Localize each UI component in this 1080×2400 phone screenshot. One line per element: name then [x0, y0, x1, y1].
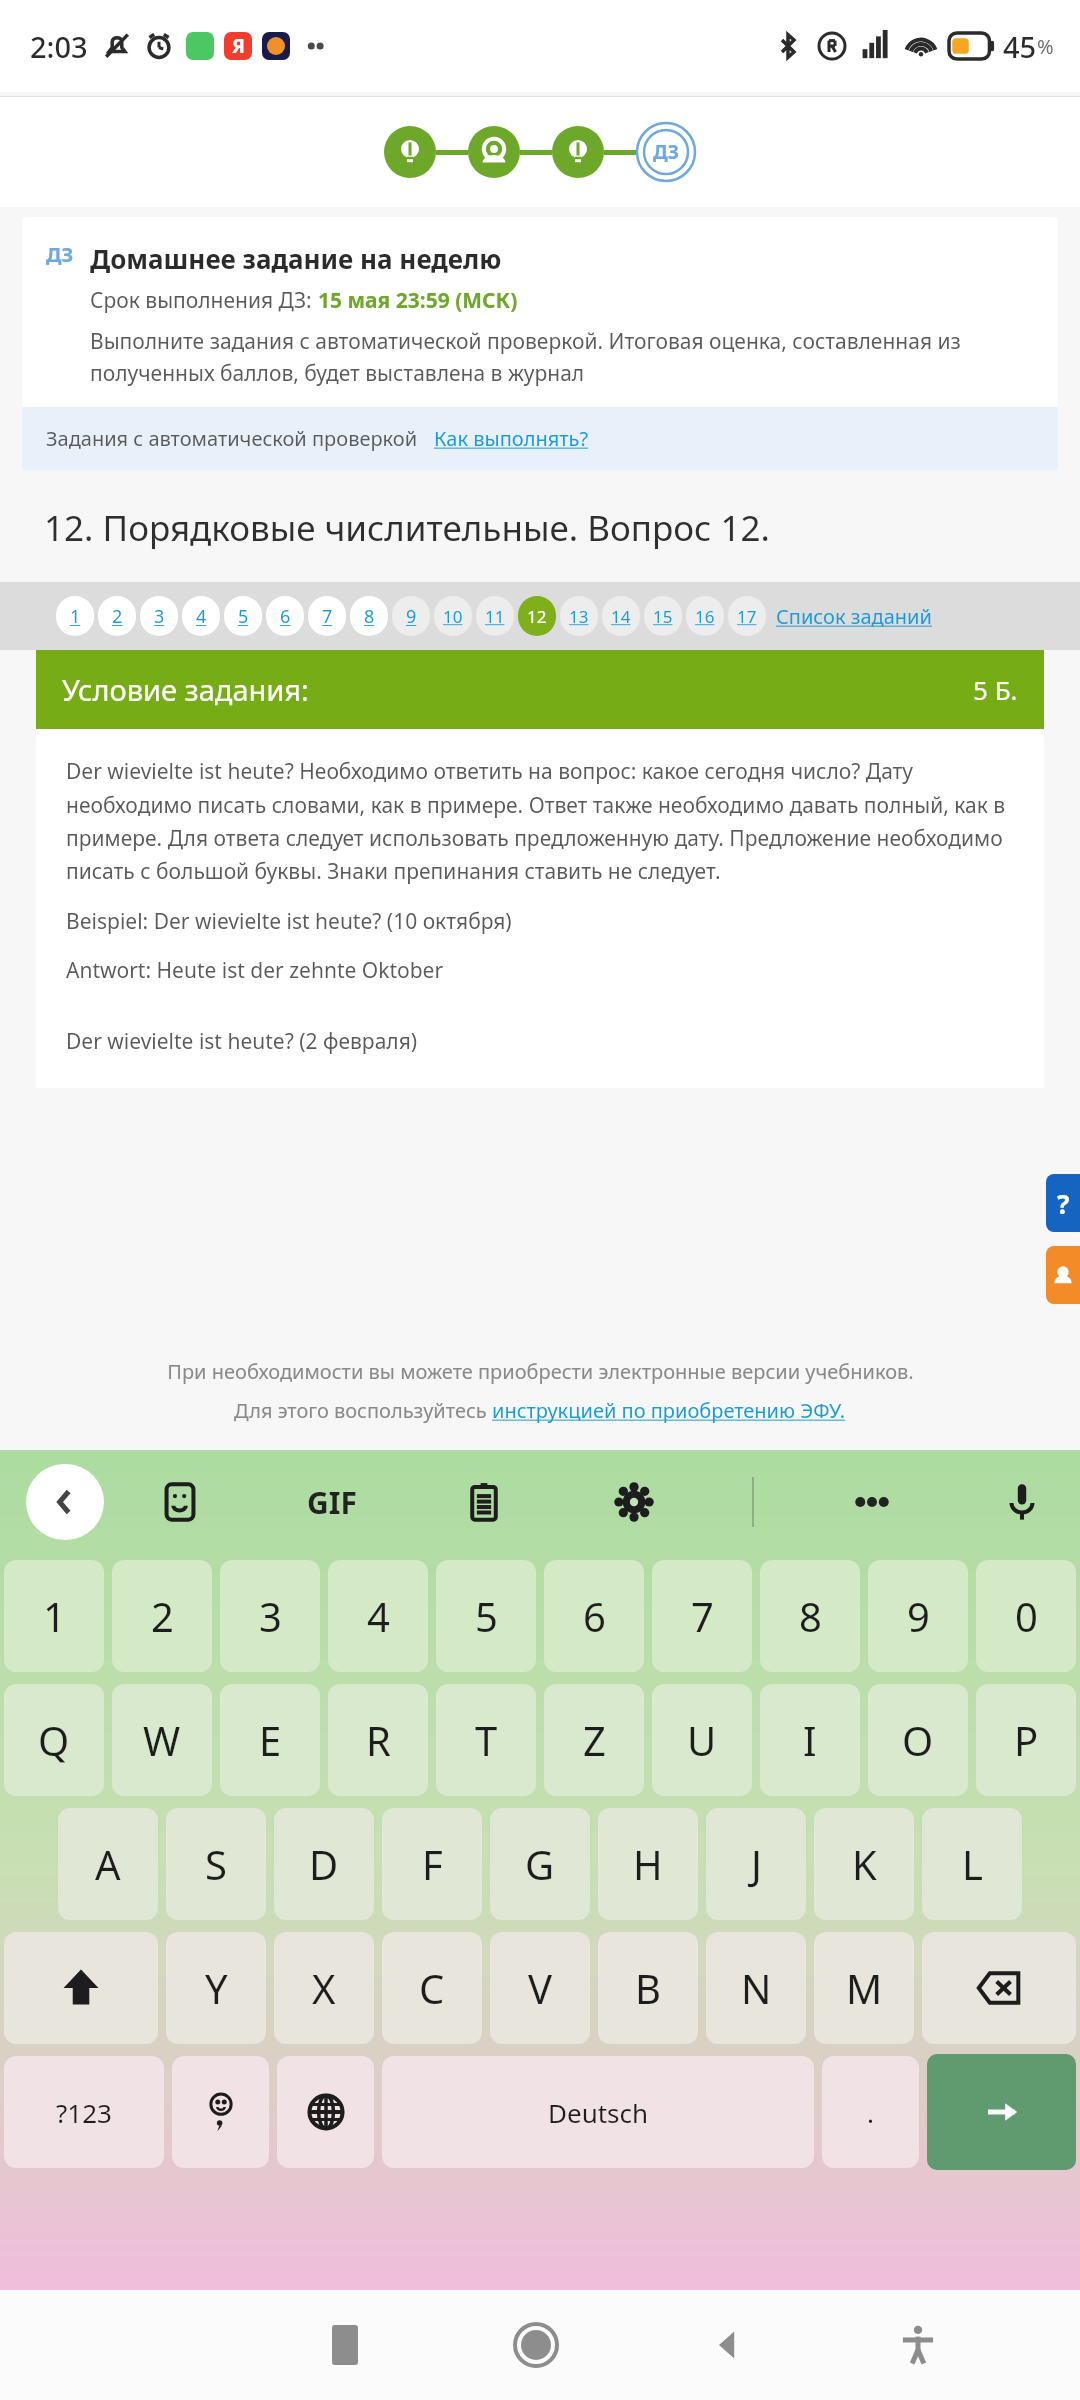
button[interactable]: H [598, 1808, 698, 1920]
button[interactable]: Z [544, 1684, 644, 1796]
staticText: ? [1057, 1186, 1070, 1221]
button[interactable]: A [58, 1808, 158, 1920]
button[interactable]: ДЗ [636, 122, 696, 182]
button[interactable]: N [706, 1932, 806, 2044]
staticText: F [422, 1837, 443, 1891]
button[interactable]: Clipboard [452, 1470, 516, 1534]
button[interactable]: Список заданий [776, 603, 932, 630]
button[interactable]: 6 [544, 1560, 644, 1672]
button[interactable]: 8 [760, 1560, 860, 1672]
button[interactable]: G [490, 1808, 590, 1920]
staticText: 15 мая 23:59 (МСК) [318, 286, 518, 315]
staticText: 4 [367, 1589, 390, 1643]
button[interactable]: Help [1046, 1174, 1080, 1232]
button[interactable]: Shift [4, 1932, 158, 2044]
button[interactable]: R [328, 1684, 428, 1796]
button[interactable]: Enter [927, 2054, 1076, 2170]
button[interactable]: 3 [220, 1560, 320, 1672]
button[interactable]: B [598, 1932, 698, 2044]
button[interactable]: Back [26, 1464, 104, 1540]
button[interactable]: Q [4, 1684, 104, 1796]
button[interactable]: F [382, 1808, 482, 1920]
button[interactable]: Language [277, 2056, 374, 2168]
staticText: L [962, 1837, 983, 1891]
button[interactable]: Settings [602, 1470, 666, 1534]
button[interactable]: Accessibility [822, 2324, 1013, 2366]
button[interactable]: 1 [56, 596, 94, 636]
button[interactable]: T [436, 1684, 536, 1796]
button[interactable]: 17 [728, 596, 766, 636]
button[interactable]: Как выполнять? [434, 425, 589, 452]
button[interactable]: ?123 [4, 2056, 164, 2168]
button[interactable]: 0 [976, 1560, 1076, 1672]
staticText: Y [205, 1961, 228, 2015]
button[interactable]: Backspace [922, 1932, 1076, 2044]
button[interactable]: Step [384, 126, 436, 178]
button[interactable]: 11 [476, 596, 514, 636]
button[interactable]: O [868, 1684, 968, 1796]
button[interactable]: 14 [602, 596, 640, 636]
button[interactable]: Home [440, 2322, 631, 2368]
staticText: 17 [737, 605, 757, 628]
button[interactable]: W [112, 1684, 212, 1796]
button[interactable]: V [490, 1932, 590, 2044]
button[interactable]: Recents [249, 2325, 440, 2365]
button[interactable]: инструкцией по приобретению ЭФУ. [492, 1397, 846, 1424]
button[interactable]: 4 [328, 1560, 428, 1672]
button[interactable]: E [220, 1684, 320, 1796]
button[interactable]: Y [166, 1932, 266, 2044]
button[interactable]: 15 [644, 596, 682, 636]
button[interactable]: Chat [1046, 1246, 1080, 1304]
button[interactable]: 12 [518, 596, 556, 636]
button[interactable]: 10 [434, 596, 472, 636]
button[interactable]: U [652, 1684, 752, 1796]
button[interactable]: 9 [868, 1560, 968, 1672]
button[interactable]: 6 [266, 596, 304, 636]
button[interactable]: D [274, 1808, 374, 1920]
button[interactable]: 8 [350, 596, 388, 636]
button[interactable]: M [814, 1932, 914, 2044]
button[interactable]: 2 [98, 596, 136, 636]
button[interactable]: 2 [112, 1560, 212, 1672]
button[interactable]: Emoji [172, 2056, 269, 2168]
button[interactable]: 7 [652, 1560, 752, 1672]
button[interactable]: Sticker [148, 1470, 212, 1534]
button[interactable]: X [274, 1932, 374, 2044]
button[interactable]: I [760, 1684, 860, 1796]
button[interactable]: J [706, 1808, 806, 1920]
button[interactable]: 5 [224, 596, 262, 636]
staticText: 45 [1003, 27, 1037, 66]
button[interactable]: 9 [392, 596, 430, 636]
button[interactable]: . [822, 2056, 919, 2168]
button[interactable]: 13 [560, 596, 598, 636]
button[interactable]: GIF [299, 1474, 365, 1531]
button[interactable]: Voice input [990, 1470, 1054, 1534]
button[interactable]: 7 [308, 596, 346, 636]
staticText: 2 [151, 1589, 174, 1643]
staticText: 4 [196, 604, 207, 629]
button[interactable]: Step [468, 126, 520, 178]
staticText: 12 [527, 605, 547, 628]
button[interactable]: Step [552, 126, 604, 178]
staticText: 8 [799, 1589, 822, 1643]
button[interactable]: 16 [686, 596, 724, 636]
button[interactable]: C [382, 1932, 482, 2044]
button[interactable]: Deutsch [382, 2056, 814, 2168]
button[interactable]: S [166, 1808, 266, 1920]
staticText: M [846, 1961, 883, 2015]
staticText: D [309, 1837, 339, 1891]
button[interactable]: 3 [140, 596, 178, 636]
staticText: A [95, 1837, 121, 1891]
button[interactable]: Back [631, 2325, 822, 2365]
button[interactable]: More [840, 1470, 904, 1534]
staticText: 10 [443, 605, 463, 628]
button[interactable]: L [922, 1808, 1022, 1920]
staticText: 13 [569, 605, 589, 628]
button[interactable]: 1 [4, 1560, 104, 1672]
staticText: 11 [485, 605, 505, 628]
button[interactable]: 5 [436, 1560, 536, 1672]
button[interactable]: P [976, 1684, 1076, 1796]
button[interactable]: K [814, 1808, 914, 1920]
staticText: Как выполнять? [434, 425, 589, 452]
button[interactable]: 4 [182, 596, 220, 636]
